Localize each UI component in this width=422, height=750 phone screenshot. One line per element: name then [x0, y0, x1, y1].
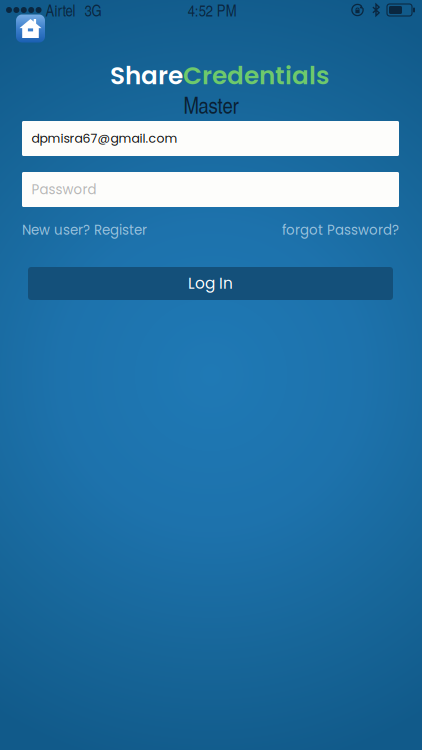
- staticText: Password: [31, 180, 96, 199]
- button[interactable]: New user? Register: [22, 221, 147, 239]
- button[interactable]: forgot Password?: [282, 221, 399, 239]
- staticText: Airtel: [46, 0, 76, 21]
- staticText: 3G: [85, 0, 102, 21]
- staticText: dpmisra67@gmail.com: [31, 130, 177, 147]
- staticText: forgot Password?: [282, 221, 399, 239]
- staticText: Share: [110, 58, 183, 93]
- staticText: 4:52 PM: [188, 0, 237, 21]
- staticText: Credentials: [183, 58, 329, 93]
- staticText: Master: [183, 89, 238, 120]
- button[interactable]: Log In: [28, 267, 393, 300]
- staticText: Log In: [188, 273, 233, 294]
- staticText: New user? Register: [22, 221, 147, 239]
